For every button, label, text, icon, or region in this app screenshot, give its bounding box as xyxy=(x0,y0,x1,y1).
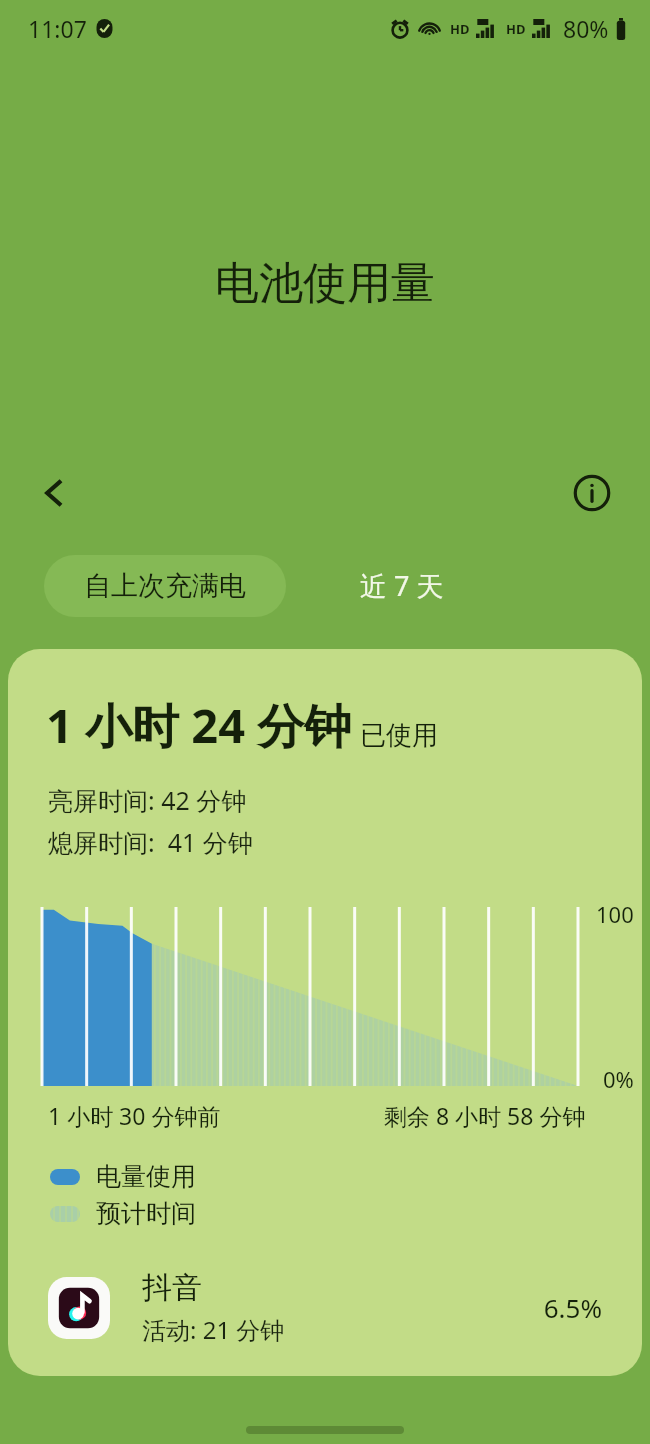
staticText: 100 xyxy=(596,899,634,929)
staticText: 1 小时 30 分钟前 xyxy=(48,1100,221,1131)
staticText: 亮屏时间: 42 分钟 xyxy=(48,783,247,817)
staticText: 自上次充满电 xyxy=(84,569,246,603)
staticText: 熄屏时间: 41 分钟 xyxy=(48,825,253,859)
staticText: 活动: 21 分钟 xyxy=(142,1313,285,1346)
button[interactable]: Back xyxy=(30,469,78,517)
staticText: 预计时间 xyxy=(96,1198,196,1229)
button[interactable]: Information xyxy=(568,469,616,517)
staticText: 电池使用量 xyxy=(215,256,435,311)
button[interactable]: 自上次充满电 xyxy=(44,555,286,617)
staticText: HD xyxy=(450,20,470,38)
staticText: 11:07 xyxy=(28,13,87,44)
staticText: HD xyxy=(506,20,526,38)
staticText: 1 小时 24 分钟 xyxy=(46,693,352,757)
staticText: 6.5% xyxy=(543,1290,602,1325)
staticText: 已使用 xyxy=(360,719,438,752)
button[interactable]: 近 7 天 xyxy=(340,553,464,618)
staticText: 电量使用 xyxy=(96,1161,196,1192)
staticText: 剩余 8 小时 58 分钟 xyxy=(384,1100,586,1131)
staticText: 80% xyxy=(563,13,609,44)
button[interactable]: 抖音 xyxy=(8,1269,642,1346)
staticText: 0% xyxy=(603,1064,634,1094)
staticText: 抖音 xyxy=(142,1269,202,1307)
staticText: 近 7 天 xyxy=(360,567,444,604)
